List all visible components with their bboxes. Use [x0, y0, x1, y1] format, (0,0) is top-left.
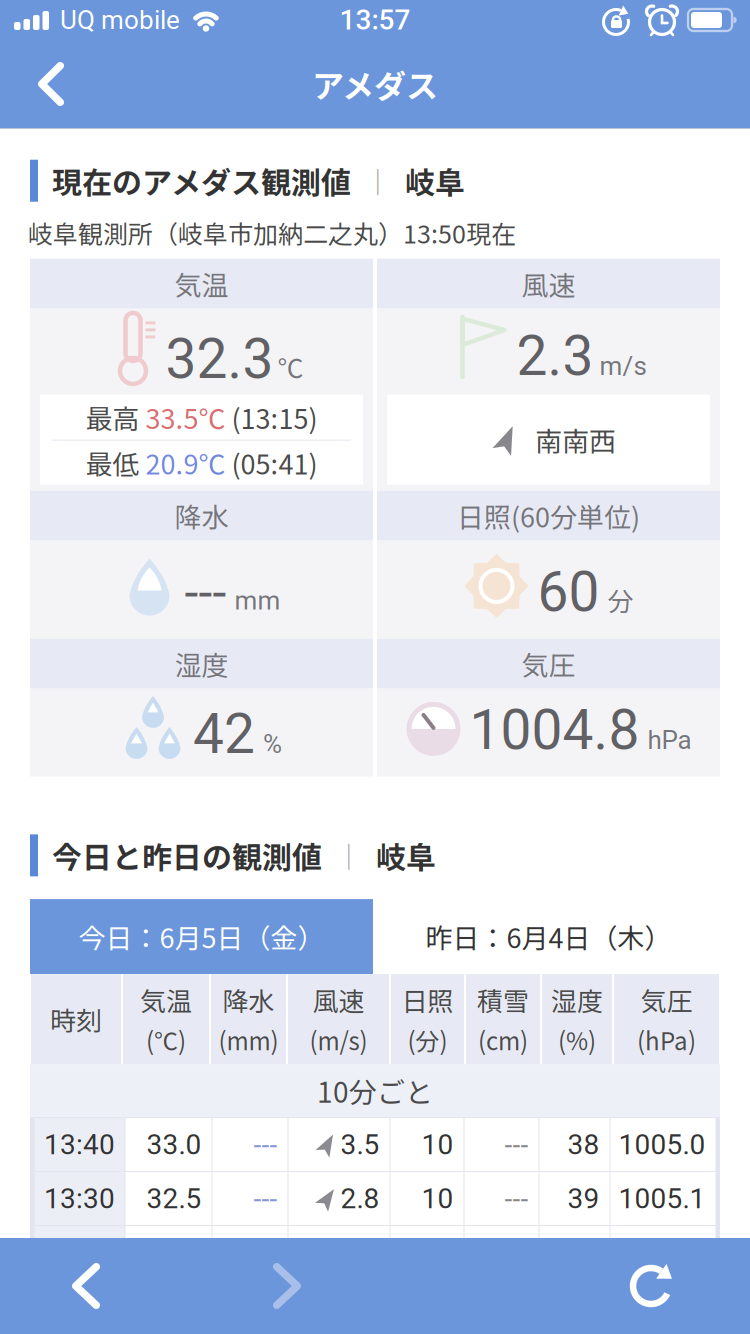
- staticText: m/s: [599, 351, 646, 381]
- staticText: 3.1: [340, 1236, 379, 1269]
- staticText: 昨日：6月4日（木）: [425, 917, 671, 956]
- staticText: 1005.0: [618, 1128, 705, 1161]
- staticText: 気圧: [521, 644, 575, 683]
- staticText: 13:20: [44, 1236, 115, 1269]
- staticText: UQ mobile: [60, 5, 180, 35]
- staticText: 時刻: [50, 1000, 102, 1038]
- staticText: ---: [504, 1182, 528, 1215]
- staticText: 気温: [140, 981, 192, 1018]
- staticText: 積雪: [477, 981, 529, 1018]
- staticText: 38: [567, 1128, 599, 1161]
- staticText: 気温: [174, 264, 228, 303]
- staticText: 13:57: [339, 4, 410, 36]
- staticText: (13:15): [225, 398, 317, 437]
- staticText: (℃): [146, 1022, 186, 1057]
- staticText: 日照(60分単位): [457, 496, 640, 535]
- button[interactable]: Back: [0, 40, 94, 128]
- button[interactable]: Forward: [180, 1238, 381, 1334]
- staticText: 10: [421, 1236, 453, 1269]
- button[interactable]: 昨日：6月4日（木）: [377, 899, 720, 974]
- staticText: 2.3: [516, 324, 593, 388]
- staticText: 今日と昨日の観測値: [52, 834, 322, 877]
- staticText: 32.8: [146, 1236, 201, 1269]
- staticText: 20.9℃: [139, 443, 225, 482]
- staticText: ---: [504, 1236, 528, 1269]
- staticText: ---: [253, 1182, 277, 1215]
- staticText: 1004.8: [469, 698, 639, 762]
- staticText: 岐阜: [376, 834, 436, 877]
- staticText: 1005.1: [618, 1182, 705, 1215]
- staticText: ---: [184, 563, 226, 622]
- staticText: 日照: [401, 981, 453, 1018]
- staticText: hPa: [647, 725, 691, 755]
- staticText: 岐阜: [405, 159, 465, 202]
- staticText: 10: [421, 1182, 453, 1215]
- staticText: (分): [407, 1022, 447, 1057]
- staticText: ℃: [277, 348, 303, 385]
- staticText: 最高: [85, 398, 139, 437]
- staticText: (05:41): [225, 443, 317, 482]
- staticText: (%): [558, 1022, 596, 1057]
- staticText: 湿度: [551, 981, 603, 1018]
- button[interactable]: Back: [0, 1238, 180, 1334]
- staticText: 10: [421, 1128, 453, 1161]
- staticText: 降水: [222, 981, 274, 1018]
- staticText: ---: [504, 1128, 528, 1161]
- staticText: 38: [567, 1236, 599, 1269]
- staticText: (hPa): [637, 1022, 696, 1057]
- staticText: ---: [253, 1128, 277, 1161]
- staticText: 33.0: [146, 1128, 201, 1161]
- staticText: 最低: [85, 443, 139, 482]
- staticText: 岐阜観測所（岐阜市加納二之丸）13:50現在: [28, 214, 516, 251]
- staticText: 39: [567, 1182, 599, 1215]
- staticText: 湿度: [174, 644, 228, 683]
- button[interactable]: 今日：6月5日（金）: [30, 899, 373, 974]
- staticText: 32.5: [146, 1182, 201, 1215]
- staticText: 現在のアメダス観測値: [52, 159, 351, 202]
- staticText: mm: [234, 585, 280, 616]
- staticText: ---: [253, 1236, 277, 1269]
- staticText: (m/s): [309, 1022, 367, 1057]
- staticText: 13:30: [44, 1182, 115, 1215]
- staticText: 南南西: [535, 420, 616, 459]
- staticText: 60: [537, 560, 599, 624]
- staticText: 1005.2: [618, 1236, 705, 1269]
- staticText: 2.8: [340, 1182, 379, 1215]
- staticText: 分: [607, 581, 633, 618]
- staticText: 32.3: [165, 327, 273, 391]
- button[interactable]: Reload: [599, 1238, 750, 1334]
- staticText: %: [263, 729, 282, 759]
- staticText: 気圧: [640, 981, 692, 1018]
- staticText: 風速: [312, 981, 364, 1018]
- staticText: 風速: [521, 264, 575, 303]
- staticText: (mm): [218, 1022, 278, 1057]
- staticText: ｜: [365, 162, 391, 199]
- staticText: 今日：6月5日（金）: [78, 917, 324, 956]
- staticText: 3.5: [340, 1128, 379, 1161]
- staticText: 降水: [174, 496, 228, 535]
- staticText: (cm): [478, 1022, 528, 1057]
- staticText: 33.5℃: [139, 398, 225, 437]
- staticText: 42: [193, 702, 255, 766]
- staticText: 13:40: [44, 1128, 115, 1161]
- staticText: 10分ごと: [317, 1070, 433, 1111]
- staticText: ｜: [336, 836, 362, 874]
- staticText: アメダス: [312, 61, 438, 107]
